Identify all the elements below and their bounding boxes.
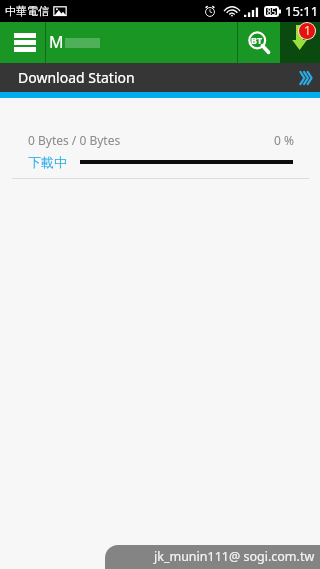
button[interactable]: Expand <box>290 63 320 92</box>
button[interactable]: Downloads <box>280 22 320 63</box>
staticText: 0 % <box>274 132 294 148</box>
staticText: Download Station <box>18 68 135 87</box>
staticText: 中華電信 <box>5 4 49 18</box>
staticText: BT <box>251 34 263 46</box>
staticText: jk_munin111@ sogi.com.tw <box>154 548 315 565</box>
staticText: M <box>49 31 64 53</box>
staticText: 85 <box>267 6 277 17</box>
button[interactable]: Search <box>238 22 280 63</box>
staticText: 下載中 <box>28 154 67 170</box>
staticText: 15:11 <box>285 2 319 20</box>
staticText: 0 Bytes / 0 Bytes <box>28 132 121 148</box>
button[interactable]: Menu <box>0 22 45 63</box>
staticText: 1 <box>304 23 311 38</box>
